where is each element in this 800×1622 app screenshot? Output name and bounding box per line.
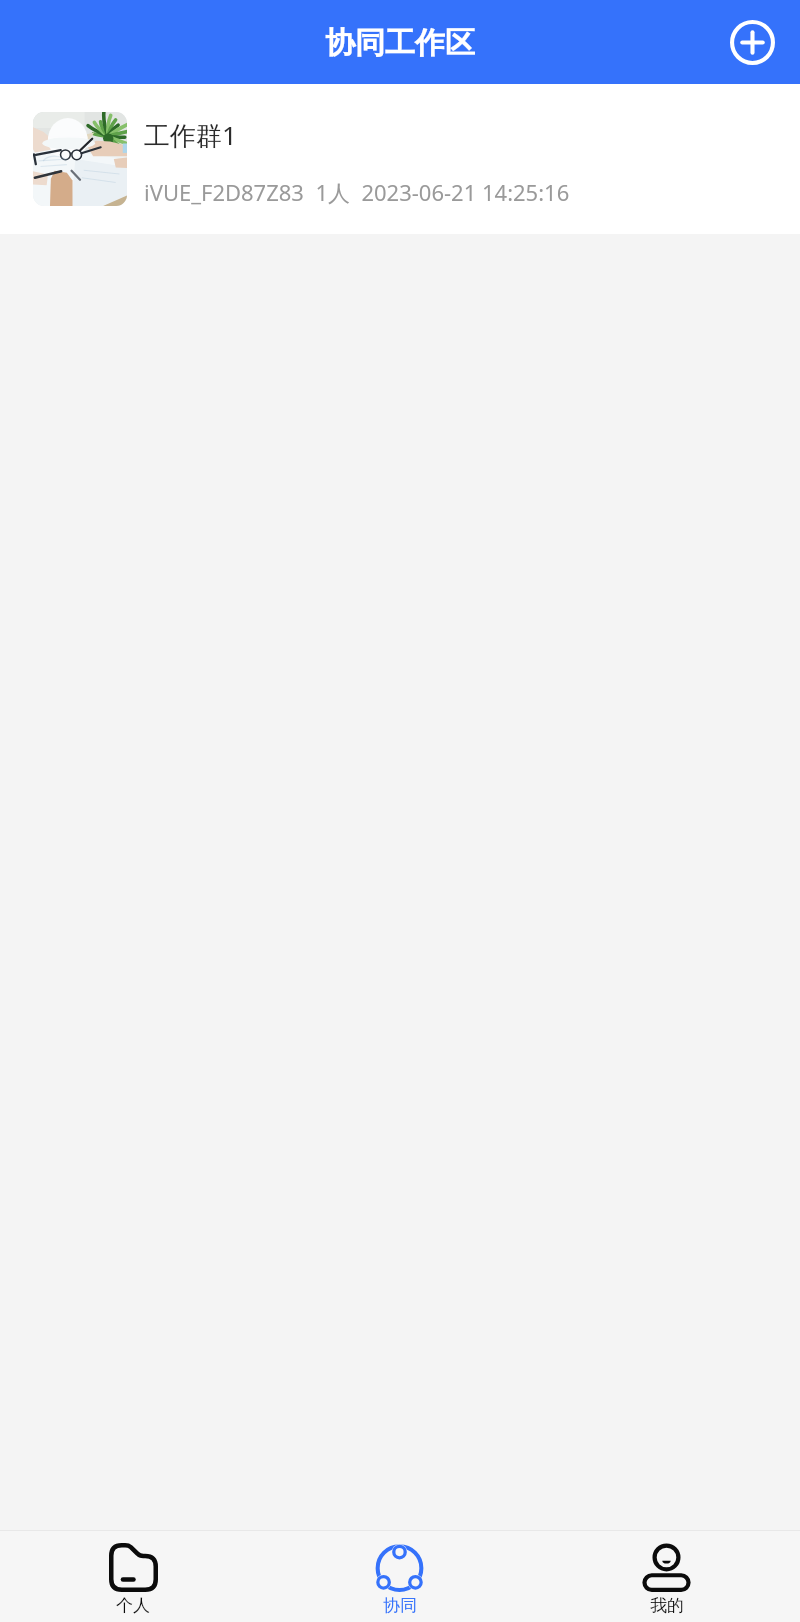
staticText: iVUE_F2D87Z83 1人 2023-06-21 14:25:16 — [144, 177, 570, 207]
staticText: 我的 — [650, 1595, 684, 1616]
staticText: 个人 — [116, 1595, 150, 1616]
staticText: 协同工作区 — [325, 24, 475, 62]
button[interactable]: 我的 — [533, 1531, 800, 1622]
button[interactable]: 协同 — [266, 1531, 533, 1622]
button[interactable]: 工作群1 — [0, 84, 800, 234]
staticText: 协同 — [383, 1595, 417, 1616]
button[interactable]: 个人 — [0, 1531, 266, 1622]
button[interactable]: Add — [725, 15, 779, 69]
staticText: 工作群1 — [144, 117, 237, 153]
